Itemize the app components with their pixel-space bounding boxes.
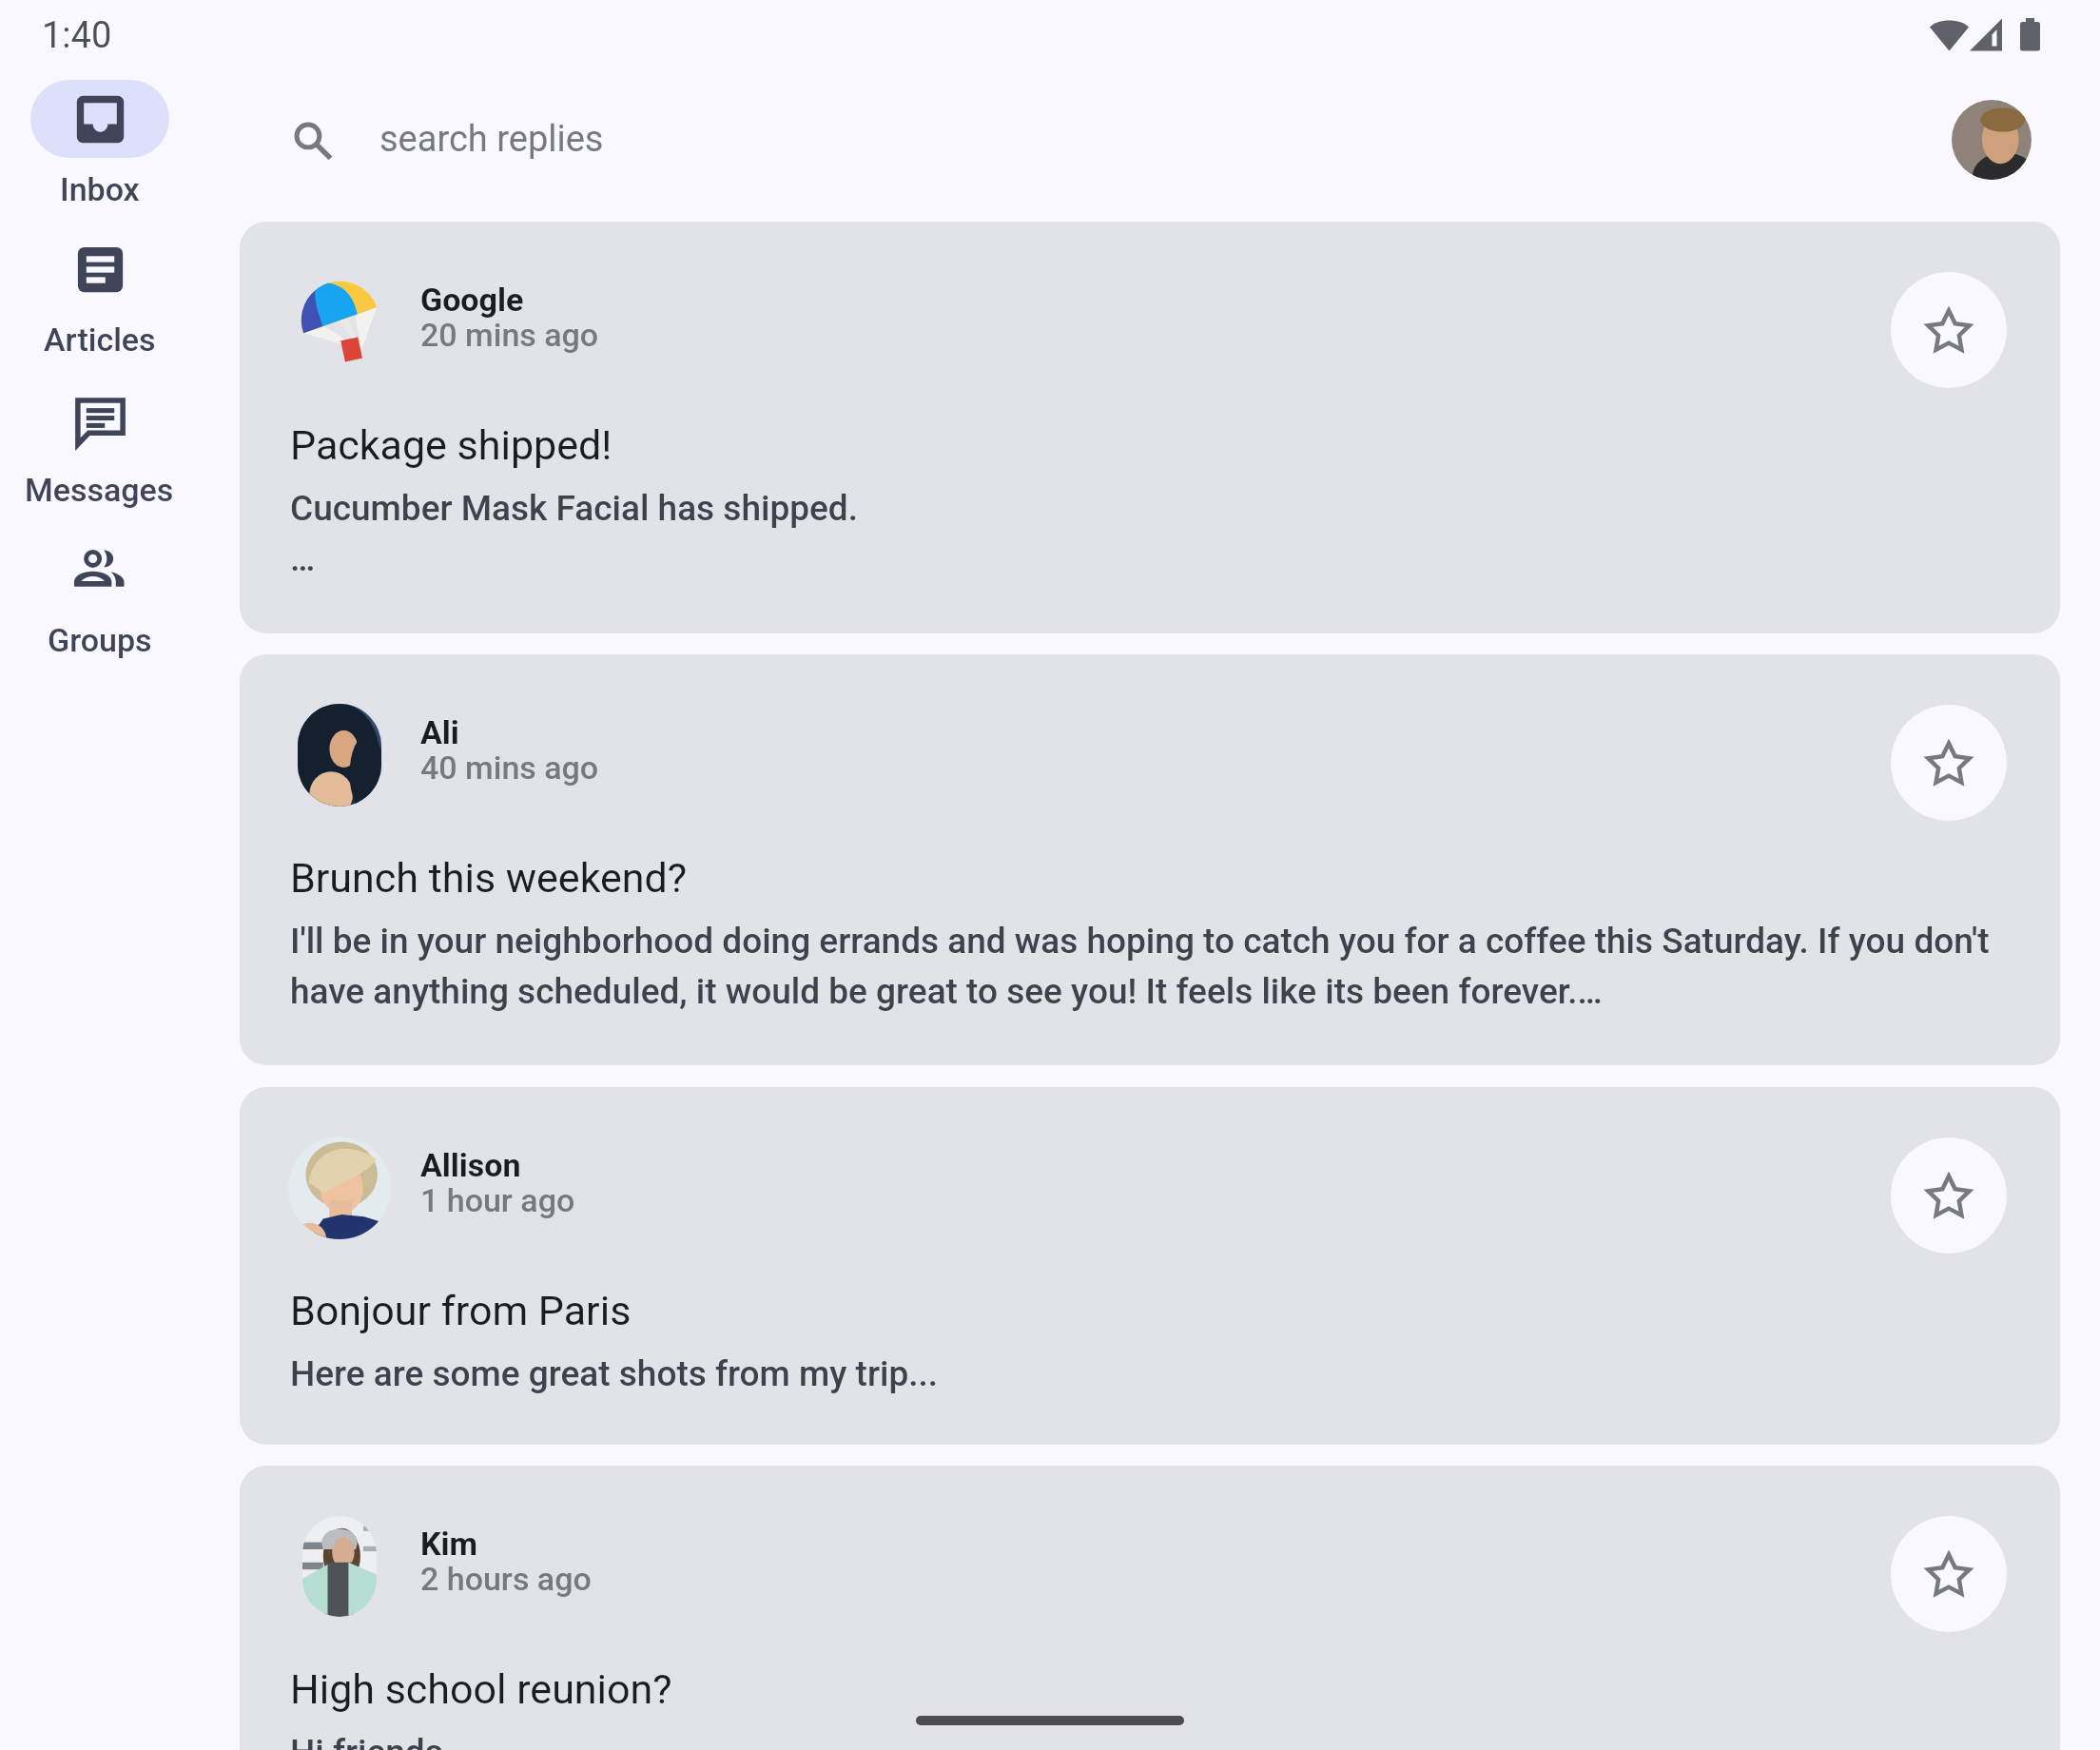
button[interactable]: Star [1891,272,2007,388]
staticText: Messages [25,471,174,509]
button[interactable]: Ali [240,654,2060,1065]
staticText: 2 hours ago [420,1560,592,1598]
staticText: 1 hour ago [420,1181,575,1219]
staticText: search replies [379,118,604,161]
staticText: Allison [420,1146,521,1184]
button[interactable]: Messages [0,380,199,509]
staticText: Articles [44,321,156,359]
button[interactable]: Star [1891,1137,2007,1254]
staticText: I'll be in your neighborhood doing erran… [290,921,2002,1012]
staticText: Cucumber Mask Facial has shipped. … [290,488,2002,579]
staticText: Inbox [60,170,140,208]
button[interactable]: Star [1891,705,2007,821]
button[interactable]: Articles [0,230,199,359]
button[interactable]: Profile [1952,100,2032,180]
staticText: Bonjour from Paris [290,1287,632,1334]
staticText: Here are some great shots from my trip..… [290,1353,2002,1394]
button[interactable]: Inbox [0,80,199,208]
staticText: Hi friends, [290,1732,2002,1750]
staticText: 40 mins ago [420,749,599,787]
button[interactable]: Groups [0,531,199,659]
staticText: 1:40 [42,14,112,57]
other: Search [286,114,338,165]
button[interactable]: Allison [240,1087,2060,1445]
staticText: Google [420,281,524,319]
button[interactable]: Star [1891,1516,2007,1632]
staticText: Brunch this weekend? [290,854,688,902]
staticText: Kim [420,1525,478,1563]
button[interactable]: Search [266,80,1902,200]
staticText: 20 mins ago [420,316,599,354]
staticText: Ali [420,713,459,751]
staticText: High school reunion? [290,1665,672,1713]
button[interactable]: Google [240,222,2060,633]
staticText: Groups [48,621,152,659]
staticText: Package shipped! [290,421,612,469]
button[interactable]: Kim [240,1466,2060,1750]
